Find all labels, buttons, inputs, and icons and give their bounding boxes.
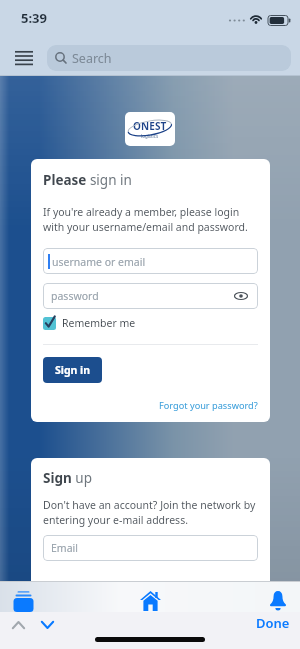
button[interactable]: Email [43, 535, 258, 561]
button[interactable] [13, 590, 34, 612]
button[interactable]: username or email [43, 248, 258, 274]
button[interactable] [39, 618, 55, 631]
staticText: Search [72, 50, 112, 67]
button[interactable]: Remember me [43, 315, 136, 330]
button[interactable]: Search [47, 45, 291, 71]
button[interactable]: password [43, 283, 258, 309]
button[interactable] [269, 591, 287, 611]
button[interactable] [10, 618, 26, 631]
button[interactable]: Done [256, 614, 290, 632]
staticText: Remember me [62, 316, 136, 330]
staticText: password [51, 289, 99, 303]
button[interactable]: Forgot your password? [159, 399, 258, 412]
staticText: logistics [141, 133, 159, 139]
staticText: username or email [52, 255, 146, 269]
staticText: Sign in [55, 363, 91, 377]
staticText: Don't have an account? Join the network … [43, 498, 256, 527]
staticText: ONEST [133, 119, 167, 133]
button[interactable]: Sign in [43, 357, 102, 383]
staticText: Sign up [43, 469, 92, 487]
staticText: If you're already a member, please login… [43, 205, 248, 234]
staticText: Email [51, 541, 78, 555]
staticText: Done [256, 614, 290, 632]
staticText: 5:39 [21, 9, 47, 27]
staticText: Please sign in [43, 171, 132, 189]
button[interactable] [0, 38, 47, 77]
button[interactable] [140, 591, 161, 611]
